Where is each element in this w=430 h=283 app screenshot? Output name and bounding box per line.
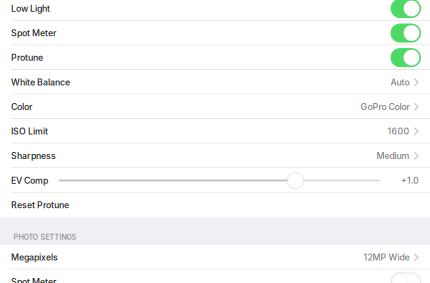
staticText: 1600 <box>388 126 410 137</box>
staticText: 12MP Wide <box>364 252 410 263</box>
button[interactable]: Protune <box>0 45 430 70</box>
staticText: Low Light <box>11 3 50 14</box>
staticText: White Balance <box>11 77 70 87</box>
staticText: GoPro Color <box>361 101 410 112</box>
button[interactable]: Spot Meter <box>0 270 430 283</box>
button[interactable]: Sharpness <box>0 144 430 168</box>
staticText: Spot Meter <box>11 277 56 283</box>
button[interactable]: ISO Limit <box>0 119 430 144</box>
button[interactable]: Megapixels <box>0 245 430 270</box>
staticText: EV Comp <box>11 175 48 186</box>
staticText: Auto <box>391 77 410 87</box>
staticText: +1.0 <box>401 175 419 186</box>
staticText: Spot Meter <box>11 28 56 38</box>
button[interactable]: Low Light <box>0 0 430 21</box>
staticText: ISO Limit <box>11 126 48 137</box>
staticText: Reset Protune <box>11 200 69 210</box>
staticText: Protune <box>11 52 43 63</box>
button[interactable]: Reset Protune <box>0 193 430 217</box>
staticText: Medium <box>377 151 410 161</box>
button[interactable]: Spot Meter <box>0 21 430 45</box>
staticText: PHOTO SETTINGS <box>14 233 77 241</box>
button[interactable]: White Balance <box>0 70 430 94</box>
staticText: Color <box>11 101 32 112</box>
button[interactable]: Color <box>0 94 430 119</box>
staticText: Megapixels <box>11 252 58 263</box>
staticText: Sharpness <box>11 151 56 161</box>
